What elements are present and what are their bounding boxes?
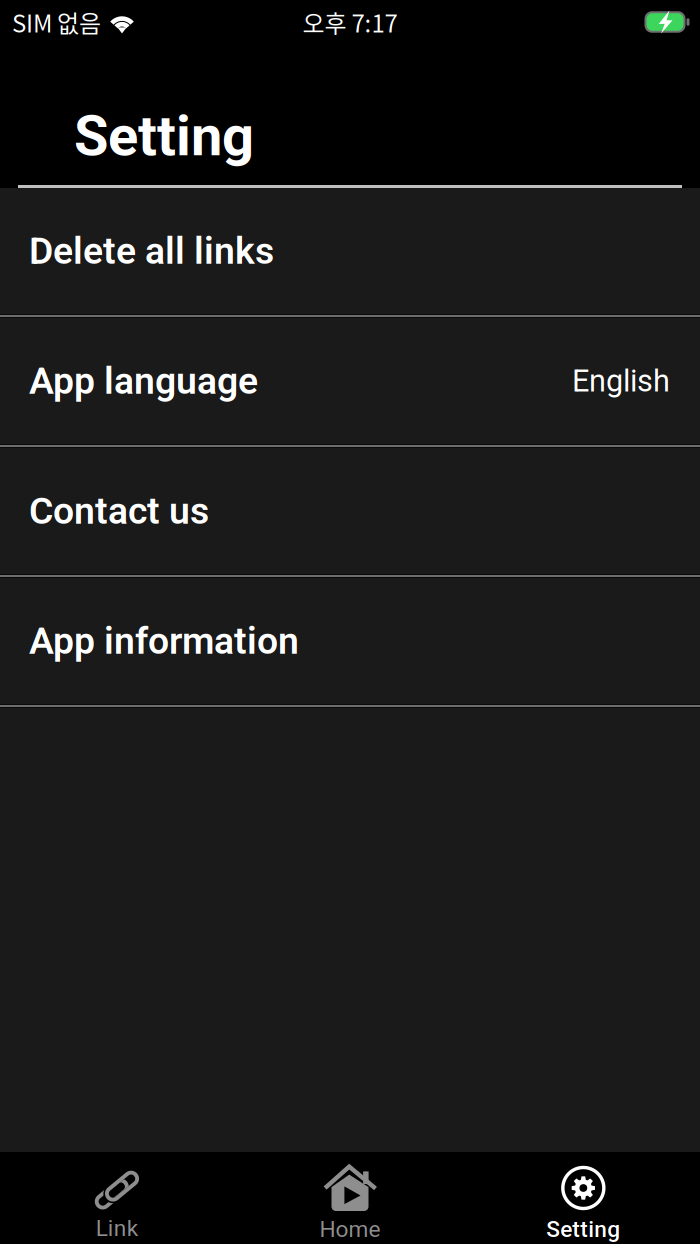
- button[interactable]: Link: [0, 1152, 233, 1244]
- button[interactable]: Contact us: [0, 448, 700, 574]
- staticText: App information: [29, 619, 299, 663]
- button[interactable]: App information: [0, 578, 700, 704]
- staticText: App language: [29, 359, 258, 403]
- staticText: SIM 없음: [12, 5, 101, 39]
- staticText: Delete all links: [29, 229, 274, 273]
- button[interactable]: Setting: [467, 1152, 700, 1244]
- staticText: Link: [96, 1215, 138, 1242]
- button[interactable]: Delete all links: [0, 188, 700, 314]
- button[interactable]: Home: [233, 1152, 467, 1244]
- staticText: Home: [319, 1216, 380, 1243]
- staticText: 오후 7:17: [302, 5, 397, 39]
- staticText: Setting: [74, 103, 254, 169]
- staticText: English: [572, 363, 670, 399]
- button[interactable]: App language: [0, 318, 700, 444]
- staticText: Setting: [546, 1216, 620, 1243]
- staticText: Contact us: [29, 489, 209, 533]
